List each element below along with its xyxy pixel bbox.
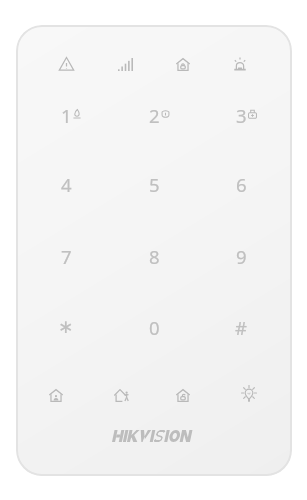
button[interactable]: 2 [121, 89, 187, 141]
other: HIKVISION [112, 430, 200, 442]
staticText: ∗ [58, 316, 74, 338]
button[interactable]: 8 [121, 230, 187, 282]
button[interactable]: 9 [208, 230, 274, 282]
button[interactable]: Alarm [223, 49, 257, 79]
button[interactable]: Armed [166, 49, 200, 79]
staticText: 7 [61, 244, 72, 269]
staticText: 2 [149, 103, 160, 128]
button[interactable]: 7 [33, 230, 99, 282]
staticText: 8 [149, 244, 160, 269]
button[interactable]: 5 [121, 158, 187, 210]
button[interactable]: Fault [49, 49, 83, 79]
staticText: 0 [149, 315, 160, 340]
staticText: 6 [236, 172, 247, 197]
button[interactable]: Away arm [104, 380, 138, 410]
button[interactable]: 0 [121, 301, 187, 353]
staticText: 1 [61, 103, 72, 128]
button[interactable]: 1 [33, 89, 99, 141]
staticText: 4 [61, 172, 72, 197]
staticText: 9 [236, 244, 247, 269]
button[interactable]: Light [232, 379, 266, 409]
button[interactable]: # [208, 301, 274, 353]
button[interactable]: 6 [208, 158, 274, 210]
staticText: 5 [149, 172, 160, 197]
button[interactable]: 4 [33, 158, 99, 210]
button[interactable]: Disarm [166, 380, 200, 410]
button[interactable]: Signal strength [108, 49, 142, 79]
button[interactable]: ∗ [33, 301, 99, 353]
staticText: # [235, 315, 247, 340]
button[interactable]: Stay arm [39, 380, 73, 410]
staticText: 3 [236, 103, 247, 128]
button[interactable]: 3 [208, 89, 274, 141]
